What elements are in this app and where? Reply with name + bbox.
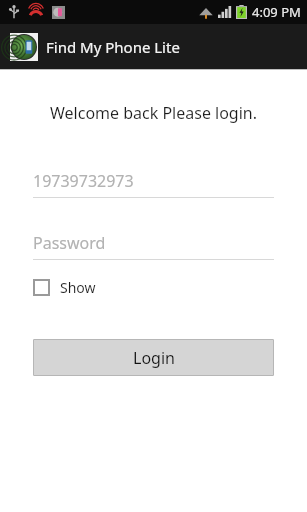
button[interactable]: Password (33, 231, 274, 260)
button[interactable]: Show (33, 274, 96, 301)
staticText: Password (33, 232, 106, 254)
staticText: 19739732973 (33, 170, 134, 192)
staticText: Login (133, 347, 175, 369)
button[interactable]: 19739732973 (33, 169, 274, 198)
staticText: 4:09 PM (252, 3, 301, 21)
staticText: Show (60, 278, 96, 297)
staticText: Welcome back Please login. (33, 102, 274, 124)
button[interactable]: Login (33, 339, 274, 376)
staticText: Find My Phone Lite (46, 37, 180, 57)
